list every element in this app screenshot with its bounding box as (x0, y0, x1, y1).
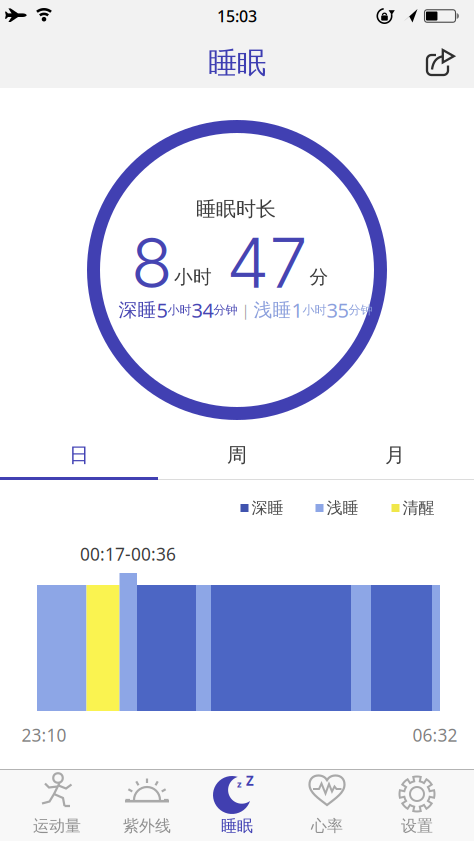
staticText: 5 (156, 297, 167, 323)
staticText: 8 (131, 222, 173, 304)
staticText: 34 (191, 297, 213, 323)
button[interactable]: 周 (158, 437, 316, 473)
staticText: 小时 (302, 303, 326, 317)
button[interactable]: 日 (0, 437, 158, 473)
staticText: 23:10 (21, 723, 66, 746)
staticText: 深睡 (118, 298, 156, 321)
button[interactable]: 运动量 (12, 771, 102, 841)
staticText: 00:17-00:36 (80, 542, 176, 565)
button[interactable]: 紫外线 (102, 771, 192, 841)
staticText: 47 (226, 222, 307, 304)
staticText: 睡眠 (208, 45, 266, 81)
staticText: 1 (291, 297, 302, 323)
staticText: 运动量 (33, 816, 81, 836)
staticText: 紫外线 (123, 816, 171, 836)
staticText: 月 (385, 443, 405, 467)
button[interactable]: 心率 (282, 771, 372, 841)
staticText: 清醒 (402, 498, 434, 518)
staticText: 设置 (401, 816, 433, 836)
staticText: 分钟 (348, 303, 372, 317)
staticText: 睡眠 (221, 816, 253, 836)
button[interactable]: 设置 (372, 771, 462, 841)
staticText: 浅睡 (253, 298, 291, 321)
staticText: z (237, 778, 242, 790)
button[interactable]: 月 (316, 437, 474, 473)
staticText: 睡眠时长 (196, 197, 276, 221)
staticText: 06:32 (412, 723, 457, 746)
staticText: 小时 (174, 265, 212, 288)
staticText: 分钟 (213, 303, 237, 317)
staticText: 深睡 (251, 498, 283, 518)
staticText: 分 (309, 265, 328, 288)
staticText: 日 (69, 443, 89, 467)
button[interactable]: Share (421, 44, 457, 82)
staticText: 35 (326, 297, 348, 323)
staticText: 心率 (311, 816, 343, 836)
staticText: 周 (227, 443, 247, 467)
staticText: Z (246, 772, 254, 789)
staticText: | (237, 300, 253, 320)
staticText: 小时 (167, 303, 191, 317)
staticText: 浅睡 (326, 498, 358, 518)
button[interactable]: z (192, 771, 282, 841)
staticText: 15:03 (217, 5, 257, 27)
